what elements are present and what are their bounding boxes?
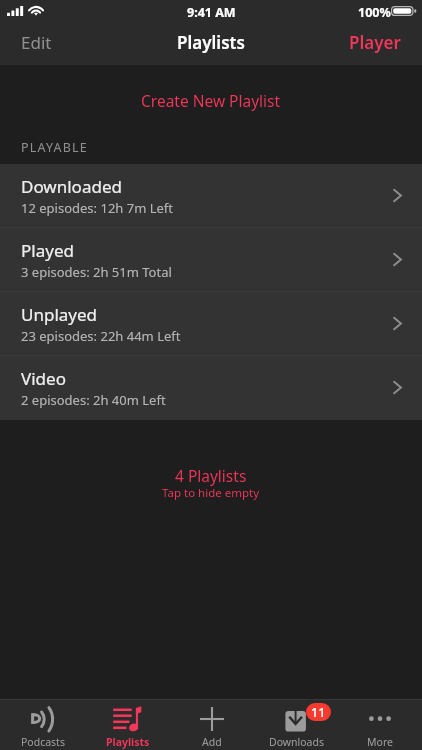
staticText: 3 episodes: 2h 51m Total <box>21 263 172 281</box>
staticText: 2 episodes: 2h 40m Left <box>21 391 166 409</box>
staticText: 100% <box>358 4 391 21</box>
staticText: Add <box>202 735 222 749</box>
button[interactable]: Create New Playlist <box>0 82 422 118</box>
staticText: Downloaded <box>21 175 122 198</box>
other: Add <box>200 707 224 731</box>
staticText: Played <box>21 239 74 262</box>
staticText: Downloads <box>269 735 324 749</box>
staticText: Video <box>21 367 66 390</box>
staticText: Edit <box>21 31 52 54</box>
staticText: Podcasts <box>21 735 65 749</box>
button[interactable]: Playlists <box>85 699 170 750</box>
staticText: PLAYABLE <box>21 139 88 156</box>
other: More <box>368 707 392 731</box>
button[interactable]: Video <box>0 356 422 420</box>
button[interactable]: Podcasts <box>0 699 85 750</box>
staticText: 11 <box>311 704 326 721</box>
staticText: Tap to hide empty <box>162 485 260 501</box>
button[interactable]: Tap to hide empty <box>152 486 270 508</box>
staticText: Create New Playlist <box>141 90 281 111</box>
staticText: Player <box>349 31 401 54</box>
button[interactable]: More <box>338 699 422 750</box>
staticText: 9:41 AM <box>187 4 236 21</box>
staticText: Unplayed <box>21 303 98 326</box>
staticText: Playlists <box>177 31 245 54</box>
button[interactable]: Add <box>170 699 254 750</box>
staticText: More <box>367 735 393 749</box>
staticText: Playlists <box>106 735 150 749</box>
button[interactable]: Downloaded <box>0 164 422 228</box>
button[interactable]: Edit <box>19 23 54 62</box>
staticText: 12 episodes: 12h 7m Left <box>21 199 174 217</box>
staticText: 4 Playlists <box>175 465 247 486</box>
button[interactable]: Downloads, 11 pending <box>254 699 338 750</box>
button[interactable]: Played <box>0 228 422 292</box>
staticText: 23 episodes: 22h 44m Left <box>21 327 181 345</box>
button[interactable]: Player <box>347 23 403 62</box>
other: Playlists <box>113 707 142 731</box>
other: Downloads, 11 pending <box>262 707 330 731</box>
other: Podcasts <box>31 707 54 731</box>
button[interactable]: Unplayed <box>0 292 422 356</box>
